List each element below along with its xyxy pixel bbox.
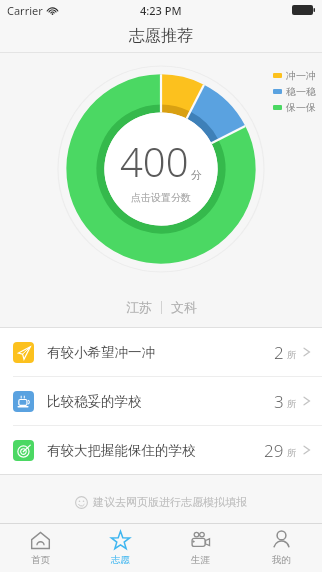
staticText: 我的 <box>272 554 291 566</box>
staticText: 比较稳妥的学校 <box>47 393 142 410</box>
staticText: 有较大把握能保住的学校 <box>47 442 196 459</box>
staticText: Carrier <box>7 3 43 18</box>
staticText: 稳一稳 <box>286 85 316 98</box>
staticText: 冲一冲 <box>286 69 316 82</box>
staticText: 2 <box>274 341 284 364</box>
button[interactable]: 生涯 <box>160 524 241 572</box>
staticText: 4:23 PM <box>140 3 182 18</box>
staticText: 分 <box>191 168 202 182</box>
button[interactable]: 志愿 <box>80 524 160 572</box>
staticText: 志愿 <box>111 554 130 566</box>
button[interactable]: 首页 <box>0 524 80 572</box>
staticText: 29 <box>264 439 284 462</box>
staticText: 有较小希望冲一冲 <box>47 344 155 361</box>
staticText: 江苏 <box>126 299 152 315</box>
button[interactable]: 江苏 <box>126 299 197 315</box>
button[interactable]: 400 <box>57 65 265 273</box>
staticText: 建议去网页版进行志愿模拟填报 <box>93 495 247 509</box>
staticText: 首页 <box>31 554 50 566</box>
staticText: 所 <box>287 447 296 458</box>
staticText: 保一保 <box>286 101 316 114</box>
staticText: 3 <box>274 390 284 413</box>
staticText: 生涯 <box>191 554 210 566</box>
staticText: 400 <box>120 134 189 188</box>
staticText: 所 <box>287 398 296 409</box>
button[interactable]: 我的 <box>241 524 322 572</box>
staticText: 所 <box>287 349 296 360</box>
button[interactable]: 建议去网页版进行志愿模拟填报 <box>0 495 322 509</box>
button[interactable]: 有较小希望冲一冲 <box>0 328 322 376</box>
staticText: 点击设置分数 <box>131 191 191 204</box>
staticText: 文科 <box>171 299 197 315</box>
button[interactable]: 比较稳妥的学校 <box>0 377 322 425</box>
button[interactable]: 有较大把握能保住的学校 <box>0 426 322 474</box>
staticText: 志愿推荐 <box>129 26 193 46</box>
